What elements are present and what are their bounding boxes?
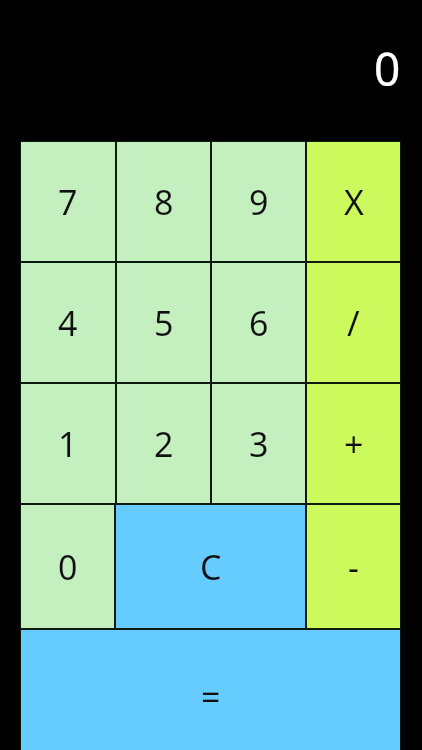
button[interactable]: 8 [117, 142, 210, 261]
button[interactable]: 6 [212, 263, 305, 382]
staticText: 8 [154, 179, 174, 225]
staticText: 2 [154, 421, 174, 467]
button[interactable]: C [116, 505, 305, 628]
button[interactable]: 0 [21, 505, 114, 628]
staticText: 5 [154, 300, 174, 346]
staticText: 0 [58, 544, 78, 590]
button[interactable]: 7 [21, 142, 115, 261]
staticText: = [201, 674, 221, 720]
staticText: 1 [58, 421, 78, 467]
button[interactable]: - [307, 505, 400, 628]
button[interactable]: 5 [117, 263, 210, 382]
staticText: 4 [58, 300, 78, 346]
staticText: 9 [249, 179, 269, 225]
button[interactable]: / [307, 263, 400, 382]
button[interactable]: 1 [21, 384, 115, 503]
staticText: 0 [374, 37, 401, 100]
button[interactable]: 2 [117, 384, 210, 503]
button[interactable]: 3 [212, 384, 305, 503]
staticText: - [348, 544, 359, 590]
staticText: / [347, 300, 360, 346]
staticText: + [344, 421, 364, 467]
staticText: 3 [249, 421, 269, 467]
staticText: 7 [58, 179, 78, 225]
staticText: C [200, 544, 222, 590]
button[interactable]: 9 [212, 142, 305, 261]
button[interactable]: X [307, 142, 400, 261]
staticText: X [344, 179, 364, 225]
button[interactable]: = [21, 630, 400, 750]
staticText: 6 [249, 300, 269, 346]
button[interactable]: + [307, 384, 400, 503]
button[interactable]: 4 [21, 263, 115, 382]
